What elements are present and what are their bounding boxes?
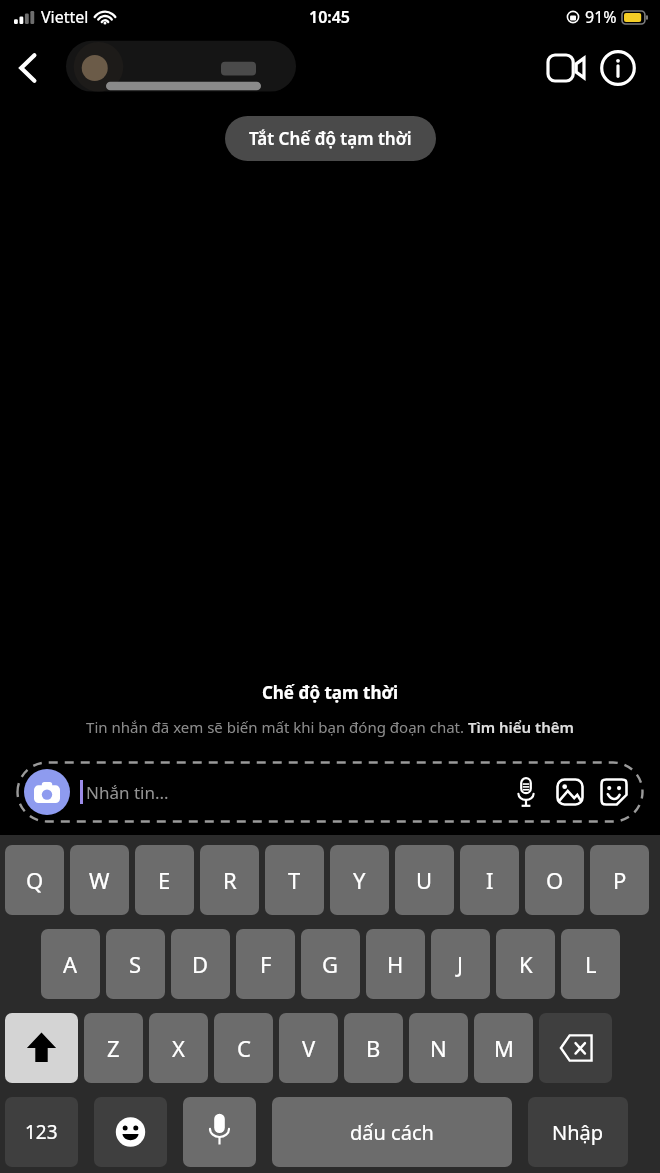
button[interactable]: dấu cách: [272, 1097, 512, 1167]
button[interactable]: A: [41, 929, 100, 999]
button[interactable]: Back: [0, 40, 56, 96]
staticText: N: [430, 1033, 447, 1063]
button[interactable]: F: [236, 929, 295, 999]
staticText: Q: [26, 865, 44, 895]
staticText: T: [288, 865, 301, 895]
button[interactable]: M: [474, 1013, 533, 1083]
button[interactable]: Z: [84, 1013, 143, 1083]
button[interactable]: W: [70, 845, 129, 915]
staticText: M: [494, 1033, 514, 1063]
button[interactable]: E: [135, 845, 194, 915]
button[interactable]: J: [431, 929, 490, 999]
staticText: K: [519, 949, 533, 979]
button[interactable]: Tắt Chế độ tạm thời: [225, 116, 436, 161]
button[interactable]: K: [496, 929, 555, 999]
staticText: 91%: [585, 6, 617, 28]
staticText: O: [546, 865, 564, 895]
button[interactable]: T: [265, 845, 324, 915]
button[interactable]: C: [214, 1013, 273, 1083]
staticText: A: [63, 949, 78, 979]
button[interactable]: U: [395, 845, 454, 915]
button[interactable]: Emoji: [94, 1097, 167, 1167]
button[interactable]: L: [561, 929, 620, 999]
button[interactable]: Stickers: [592, 770, 636, 814]
staticText: H: [387, 949, 404, 979]
staticText: R: [223, 865, 237, 895]
button[interactable]: Backspace: [539, 1013, 612, 1083]
button[interactable]: X: [149, 1013, 208, 1083]
staticText: Tắt Chế độ tạm thời: [249, 127, 412, 150]
staticText: D: [192, 949, 209, 979]
button[interactable]: R: [200, 845, 259, 915]
staticText: Tin nhắn đã xem sẽ biến mất khi bạn đóng…: [36, 717, 624, 737]
staticText: Viettel: [41, 6, 89, 28]
button[interactable]: B: [344, 1013, 403, 1083]
staticText: J: [457, 949, 464, 979]
staticText: Y: [353, 865, 366, 895]
staticText: B: [366, 1033, 381, 1063]
button[interactable]: N: [409, 1013, 468, 1083]
staticText: C: [237, 1033, 251, 1063]
staticText: 10:45: [309, 6, 351, 28]
button[interactable]: P: [590, 845, 649, 915]
button[interactable]: Camera: [24, 769, 70, 815]
button[interactable]: Q: [5, 845, 64, 915]
button[interactable]: Gallery: [548, 770, 592, 814]
button[interactable]: Shift: [5, 1013, 78, 1083]
staticText: F: [260, 949, 272, 979]
button[interactable]: V: [279, 1013, 338, 1083]
staticText: G: [322, 949, 339, 979]
button[interactable]: Dictation: [183, 1097, 256, 1167]
button[interactable]: S: [106, 929, 165, 999]
staticText: dấu cách: [350, 1119, 434, 1146]
button[interactable]: H: [366, 929, 425, 999]
staticText: U: [416, 865, 433, 895]
staticText: Nhập: [552, 1119, 604, 1146]
staticText: W: [89, 865, 110, 895]
staticText: S: [129, 949, 142, 979]
button[interactable]: Voice message: [504, 770, 548, 814]
button[interactable]: O: [525, 845, 584, 915]
button[interactable]: D: [171, 929, 230, 999]
staticText: V: [302, 1033, 316, 1063]
button[interactable]: G: [301, 929, 360, 999]
staticText: Nhắn tin...: [86, 781, 169, 804]
button[interactable]: 123: [5, 1097, 78, 1167]
button[interactable]: Info: [592, 42, 644, 94]
staticText: Z: [107, 1033, 120, 1063]
button[interactable]: Y: [330, 845, 389, 915]
staticText: 123: [25, 1119, 58, 1145]
staticText: L: [585, 949, 597, 979]
button[interactable]: Nhập: [528, 1097, 628, 1167]
button[interactable]: Video call: [540, 42, 592, 94]
staticText: X: [172, 1033, 185, 1063]
staticText: Chế độ tạm thời: [36, 681, 624, 704]
staticText: E: [158, 865, 171, 895]
staticText: P: [613, 865, 627, 895]
staticText: I: [486, 865, 494, 895]
button[interactable]: I: [460, 845, 519, 915]
